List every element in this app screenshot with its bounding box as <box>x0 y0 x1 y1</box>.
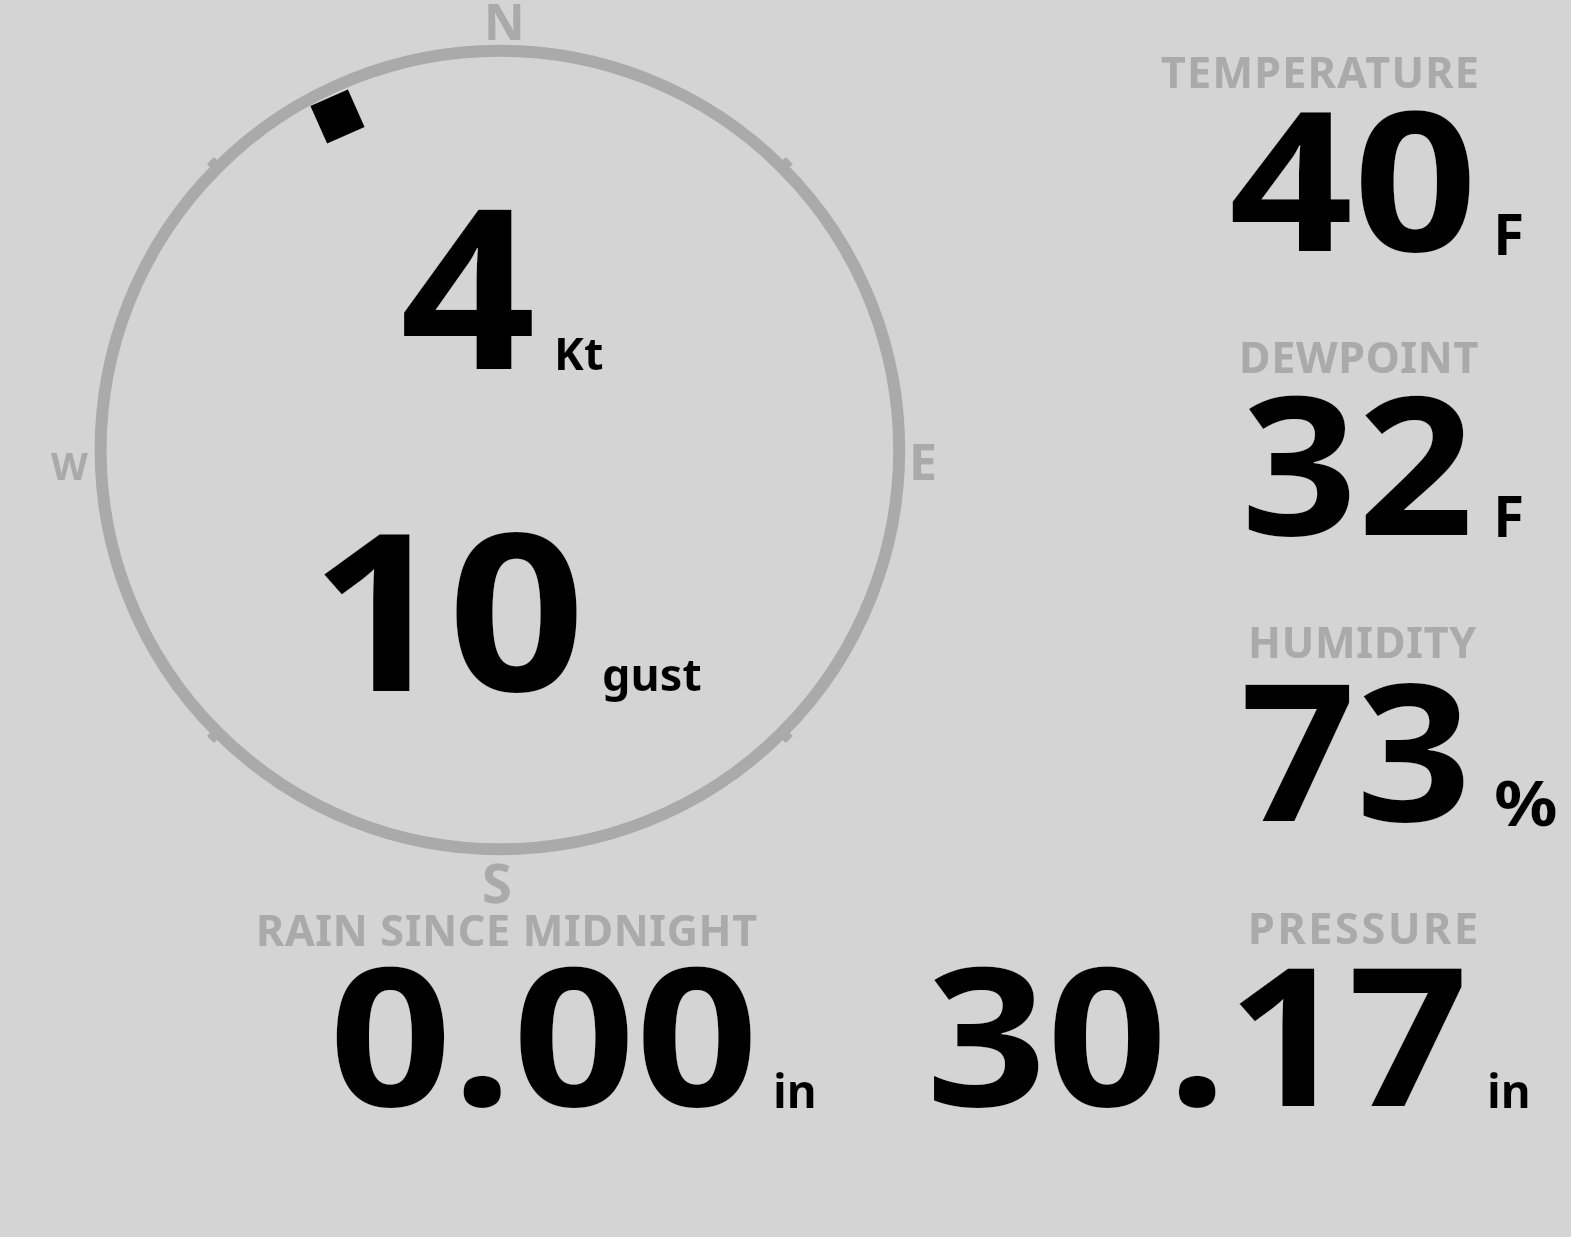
staticText: 40 <box>1229 44 1478 308</box>
staticText: in <box>1487 1059 1531 1122</box>
staticText: F <box>1493 476 1525 554</box>
button[interactable]: Pressure 30.17 in <box>880 895 1571 1125</box>
staticText: 0.00 <box>329 901 759 1163</box>
staticText: S <box>482 845 512 919</box>
staticText: 10 <box>310 457 586 755</box>
staticText: E <box>909 427 937 495</box>
button[interactable]: Dewpoint 32 F <box>1100 325 1571 595</box>
staticText: Kt <box>554 322 604 383</box>
staticText: 30.17 <box>926 901 1469 1163</box>
staticText: HUMIDITY <box>1248 612 1478 671</box>
staticText: 73 <box>1240 618 1472 877</box>
staticText: % <box>1494 759 1558 845</box>
button[interactable]: Rain since midnight 0.00 in <box>220 895 840 1125</box>
staticText: F <box>1493 194 1525 272</box>
button[interactable]: Wind 4 knots, gusting 10, from north-nor… <box>85 35 915 865</box>
button[interactable]: Temperature 40 F <box>1100 40 1571 310</box>
staticText: DEWPOINT <box>1239 327 1479 386</box>
staticText: W <box>51 439 88 491</box>
staticText: PRESSURE <box>1248 898 1481 957</box>
staticText: RAIN SINCE MIDNIGHT <box>256 900 758 959</box>
staticText: gust <box>602 643 702 704</box>
staticText: 4 <box>400 132 536 434</box>
staticText: TEMPERATURE <box>1161 42 1481 101</box>
staticText: in <box>773 1059 817 1122</box>
staticText: 32 <box>1241 329 1474 592</box>
button[interactable]: Humidity 73 percent <box>1100 610 1571 880</box>
staticText: N <box>484 0 525 55</box>
